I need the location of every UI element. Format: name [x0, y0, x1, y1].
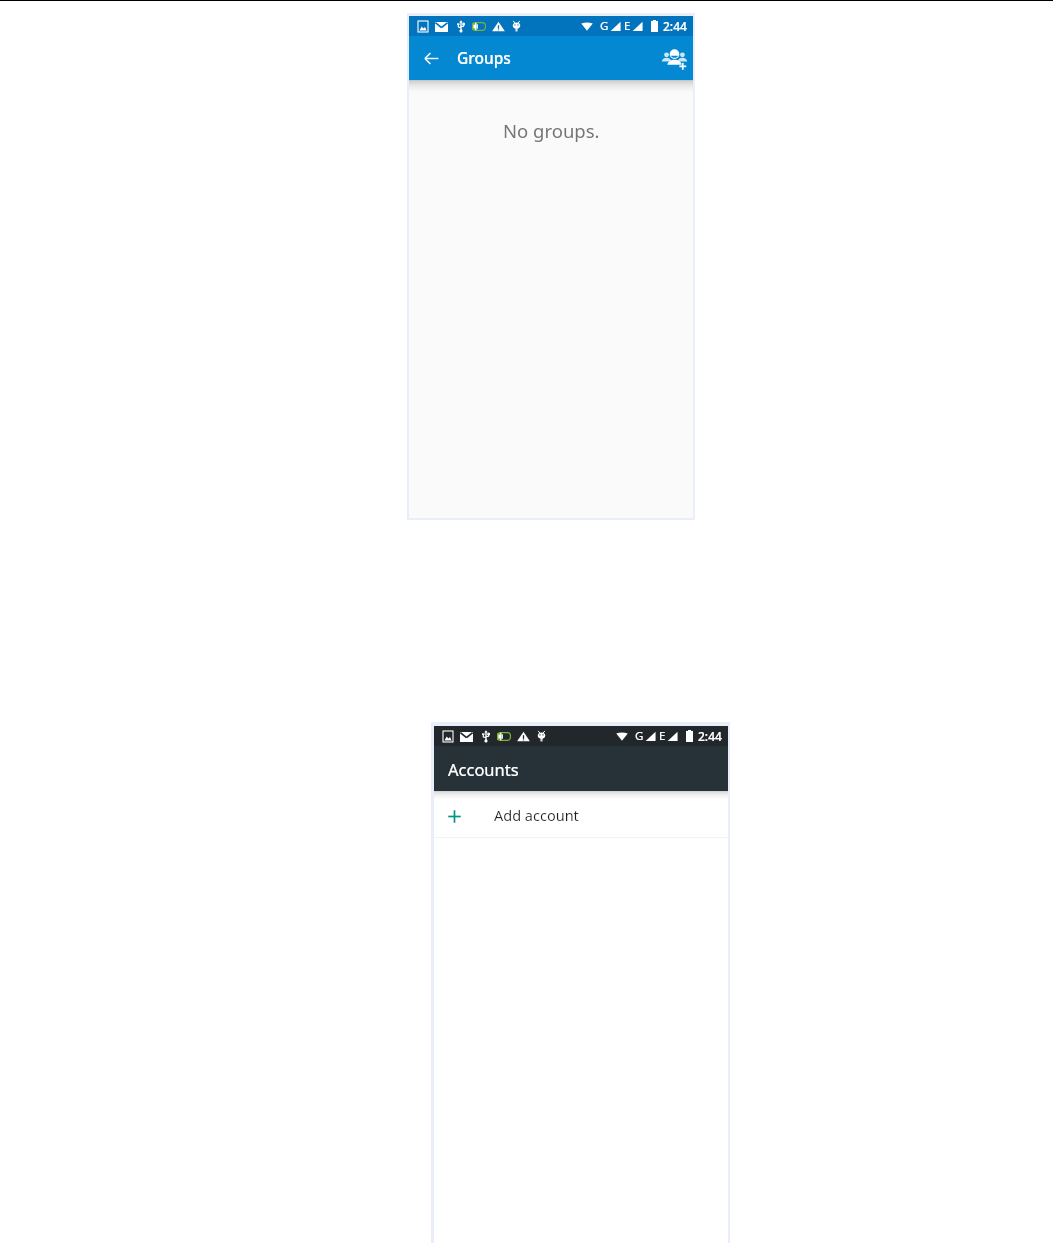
- staticText: 2:44: [698, 728, 722, 744]
- button[interactable]: Back: [416, 43, 446, 73]
- button[interactable]: Add group: [659, 43, 689, 73]
- staticText: E: [659, 728, 666, 744]
- staticText: Accounts: [448, 758, 519, 780]
- button[interactable]: Add account: [434, 791, 728, 837]
- staticText: Add account: [494, 805, 579, 825]
- staticText: 2:44: [663, 18, 687, 34]
- staticText: E: [624, 18, 631, 34]
- staticText: G: [635, 728, 644, 744]
- staticText: Groups: [457, 47, 511, 68]
- staticText: No groups.: [503, 118, 600, 143]
- staticText: G: [600, 18, 609, 34]
